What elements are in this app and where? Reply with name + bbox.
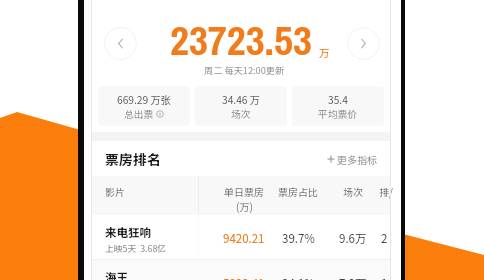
- staticText: 海王: [105, 269, 128, 280]
- staticText: 39.7%: [282, 230, 315, 247]
- staticText: (万): [236, 199, 253, 213]
- button[interactable]: 34.46 万: [195, 86, 287, 126]
- button[interactable]: 35.4: [292, 86, 384, 126]
- staticText: 24.1%: [282, 275, 315, 280]
- staticText: 5923.41: [223, 275, 265, 280]
- staticText: 1: [381, 275, 388, 280]
- button[interactable]: 海王: [92, 260, 390, 280]
- staticText: 影片: [105, 184, 125, 198]
- button[interactable]: 更多指标: [321, 146, 383, 172]
- staticText: 场次: [231, 107, 251, 121]
- staticText: 上映5天 3.68亿: [105, 242, 167, 255]
- staticText: 9420.21: [223, 230, 265, 247]
- staticText: 场次: [343, 184, 363, 198]
- staticText: 来电狂响: [105, 224, 151, 241]
- staticText: 单日票房: [224, 184, 264, 198]
- staticText: 平均票价: [318, 107, 358, 121]
- staticText: 票房占比: [278, 184, 318, 198]
- staticText: 排/: [379, 184, 393, 198]
- button[interactable]: 来电狂响: [92, 215, 390, 259]
- staticText: 总出票: [124, 107, 154, 121]
- staticText: 万: [319, 45, 330, 60]
- staticText: 2: [381, 230, 388, 247]
- staticText: 669.29 万张: [117, 92, 171, 107]
- staticText: 9.6万: [339, 230, 367, 247]
- staticText: 7.3万: [339, 275, 367, 280]
- button[interactable]: 669.29 万张: [98, 86, 190, 126]
- staticText: 周二 每天12:00更新: [204, 63, 285, 76]
- button[interactable]: Previous day: [104, 27, 137, 60]
- staticText: 34.46 万: [222, 92, 260, 107]
- staticText: 23723.53: [170, 12, 312, 68]
- staticText: 更多指标: [337, 152, 377, 166]
- staticText: 35.4: [328, 92, 348, 107]
- staticText: 票房排名: [105, 149, 161, 169]
- button[interactable]: Next day: [347, 27, 380, 60]
